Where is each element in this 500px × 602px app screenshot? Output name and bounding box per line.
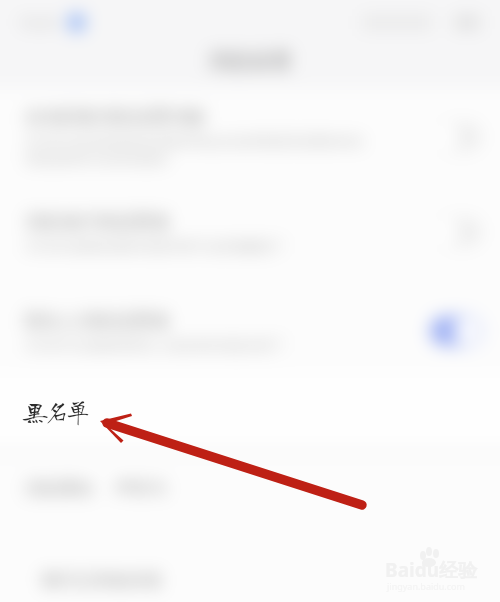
button[interactable]: 陌生人消息设置项 (0, 285, 500, 377)
staticText: 开启后当好友给您发送消息时将会自动回复您所设置好的内 容发送给对方好友知道的 (25, 133, 363, 168)
button[interactable]: Off (430, 122, 482, 152)
button[interactable]: Off (430, 217, 482, 247)
staticText: 自动回复消息设置功能 (25, 106, 205, 129)
staticText: 消息通知 (25, 478, 93, 499)
staticText: 陌生人消息设置项 (25, 310, 169, 333)
staticText: Baidu经验 (385, 557, 478, 583)
button[interactable]: 消息免打扰设置项 (0, 185, 500, 279)
staticText: 声音与 (115, 478, 166, 499)
staticText: 消息免打扰设置项 (25, 211, 169, 234)
staticText: 黑名单 (22, 398, 87, 424)
button[interactable]: 聊天记录备份项 (0, 558, 500, 602)
staticText: 消息设置 (208, 48, 292, 74)
button[interactable]: 消息通知 (0, 466, 500, 510)
button[interactable]: On (430, 316, 482, 346)
button[interactable]: 自动回复消息设置功能 (0, 89, 500, 185)
